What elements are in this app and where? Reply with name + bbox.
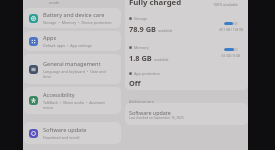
staticText: available [154, 57, 169, 62]
button[interactable]: General management [24, 54, 121, 84]
button[interactable]: Apps [24, 31, 121, 51]
staticText: Last checked on September 16, 2025 [129, 116, 184, 120]
staticText: Download and install [43, 135, 80, 140]
staticText: mode [49, 0, 60, 5]
staticText: App protection [134, 71, 160, 76]
staticText: Off [129, 78, 141, 88]
staticText: Software update [43, 126, 87, 134]
staticText: Storage • Memory • Device protection [43, 20, 112, 25]
staticText: Default apps • App settings [43, 43, 92, 48]
button[interactable]: Accessibility [24, 87, 121, 114]
staticText: Accessibility [43, 91, 75, 99]
staticText: Software update [129, 109, 171, 116]
staticText: 78.9 GB [129, 24, 156, 34]
staticText: Storage [134, 16, 148, 21]
staticText: 100% available [213, 2, 238, 7]
staticText: 1.8 GB [129, 53, 152, 63]
staticText: Fully charged [129, 0, 182, 8]
staticText: Apps [43, 34, 57, 42]
staticText: time [43, 74, 51, 79]
button[interactable]: Software update [24, 122, 121, 144]
button[interactable] [125, 103, 248, 125]
staticText: menu [43, 105, 54, 110]
staticText: Additional care [129, 99, 154, 104]
staticText: General management [43, 60, 101, 68]
staticText: Battery and device care [43, 11, 105, 19]
staticText: TalkBack • Mono audio • Assistant [43, 100, 105, 105]
staticText: 3.5 GB / 8 GB [221, 54, 241, 58]
staticText: Language and keyboard • Date and [43, 69, 106, 74]
staticText: available [158, 28, 173, 33]
button[interactable]: Battery and device care [24, 8, 121, 28]
staticText: Memory [134, 45, 149, 50]
staticText: 49.1 GB / 128 GB [219, 28, 244, 32]
